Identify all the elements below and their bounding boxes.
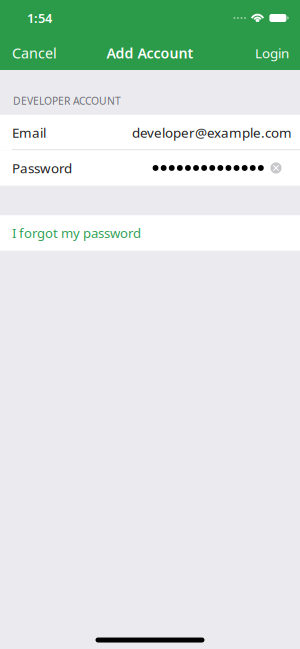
- button[interactable]: Login: [247, 37, 300, 69]
- button[interactable]: Clear password: [267, 159, 285, 177]
- staticText: developer@example.com: [132, 124, 292, 141]
- staticText: I forgot my password: [12, 224, 141, 242]
- staticText: Add Account: [106, 44, 193, 62]
- staticText: Email: [12, 124, 46, 141]
- staticText: Cancel: [12, 43, 57, 62]
- staticText: 1:54: [27, 9, 52, 26]
- button[interactable]: Password: [0, 150, 264, 186]
- button[interactable]: Email: [0, 115, 300, 150]
- button[interactable]: Cancel: [0, 36, 65, 69]
- staticText: Login: [255, 44, 289, 62]
- staticText: DEVELOPER ACCOUNT: [13, 94, 121, 108]
- button[interactable]: I forgot my password: [0, 215, 300, 251]
- staticText: Password: [12, 159, 72, 177]
